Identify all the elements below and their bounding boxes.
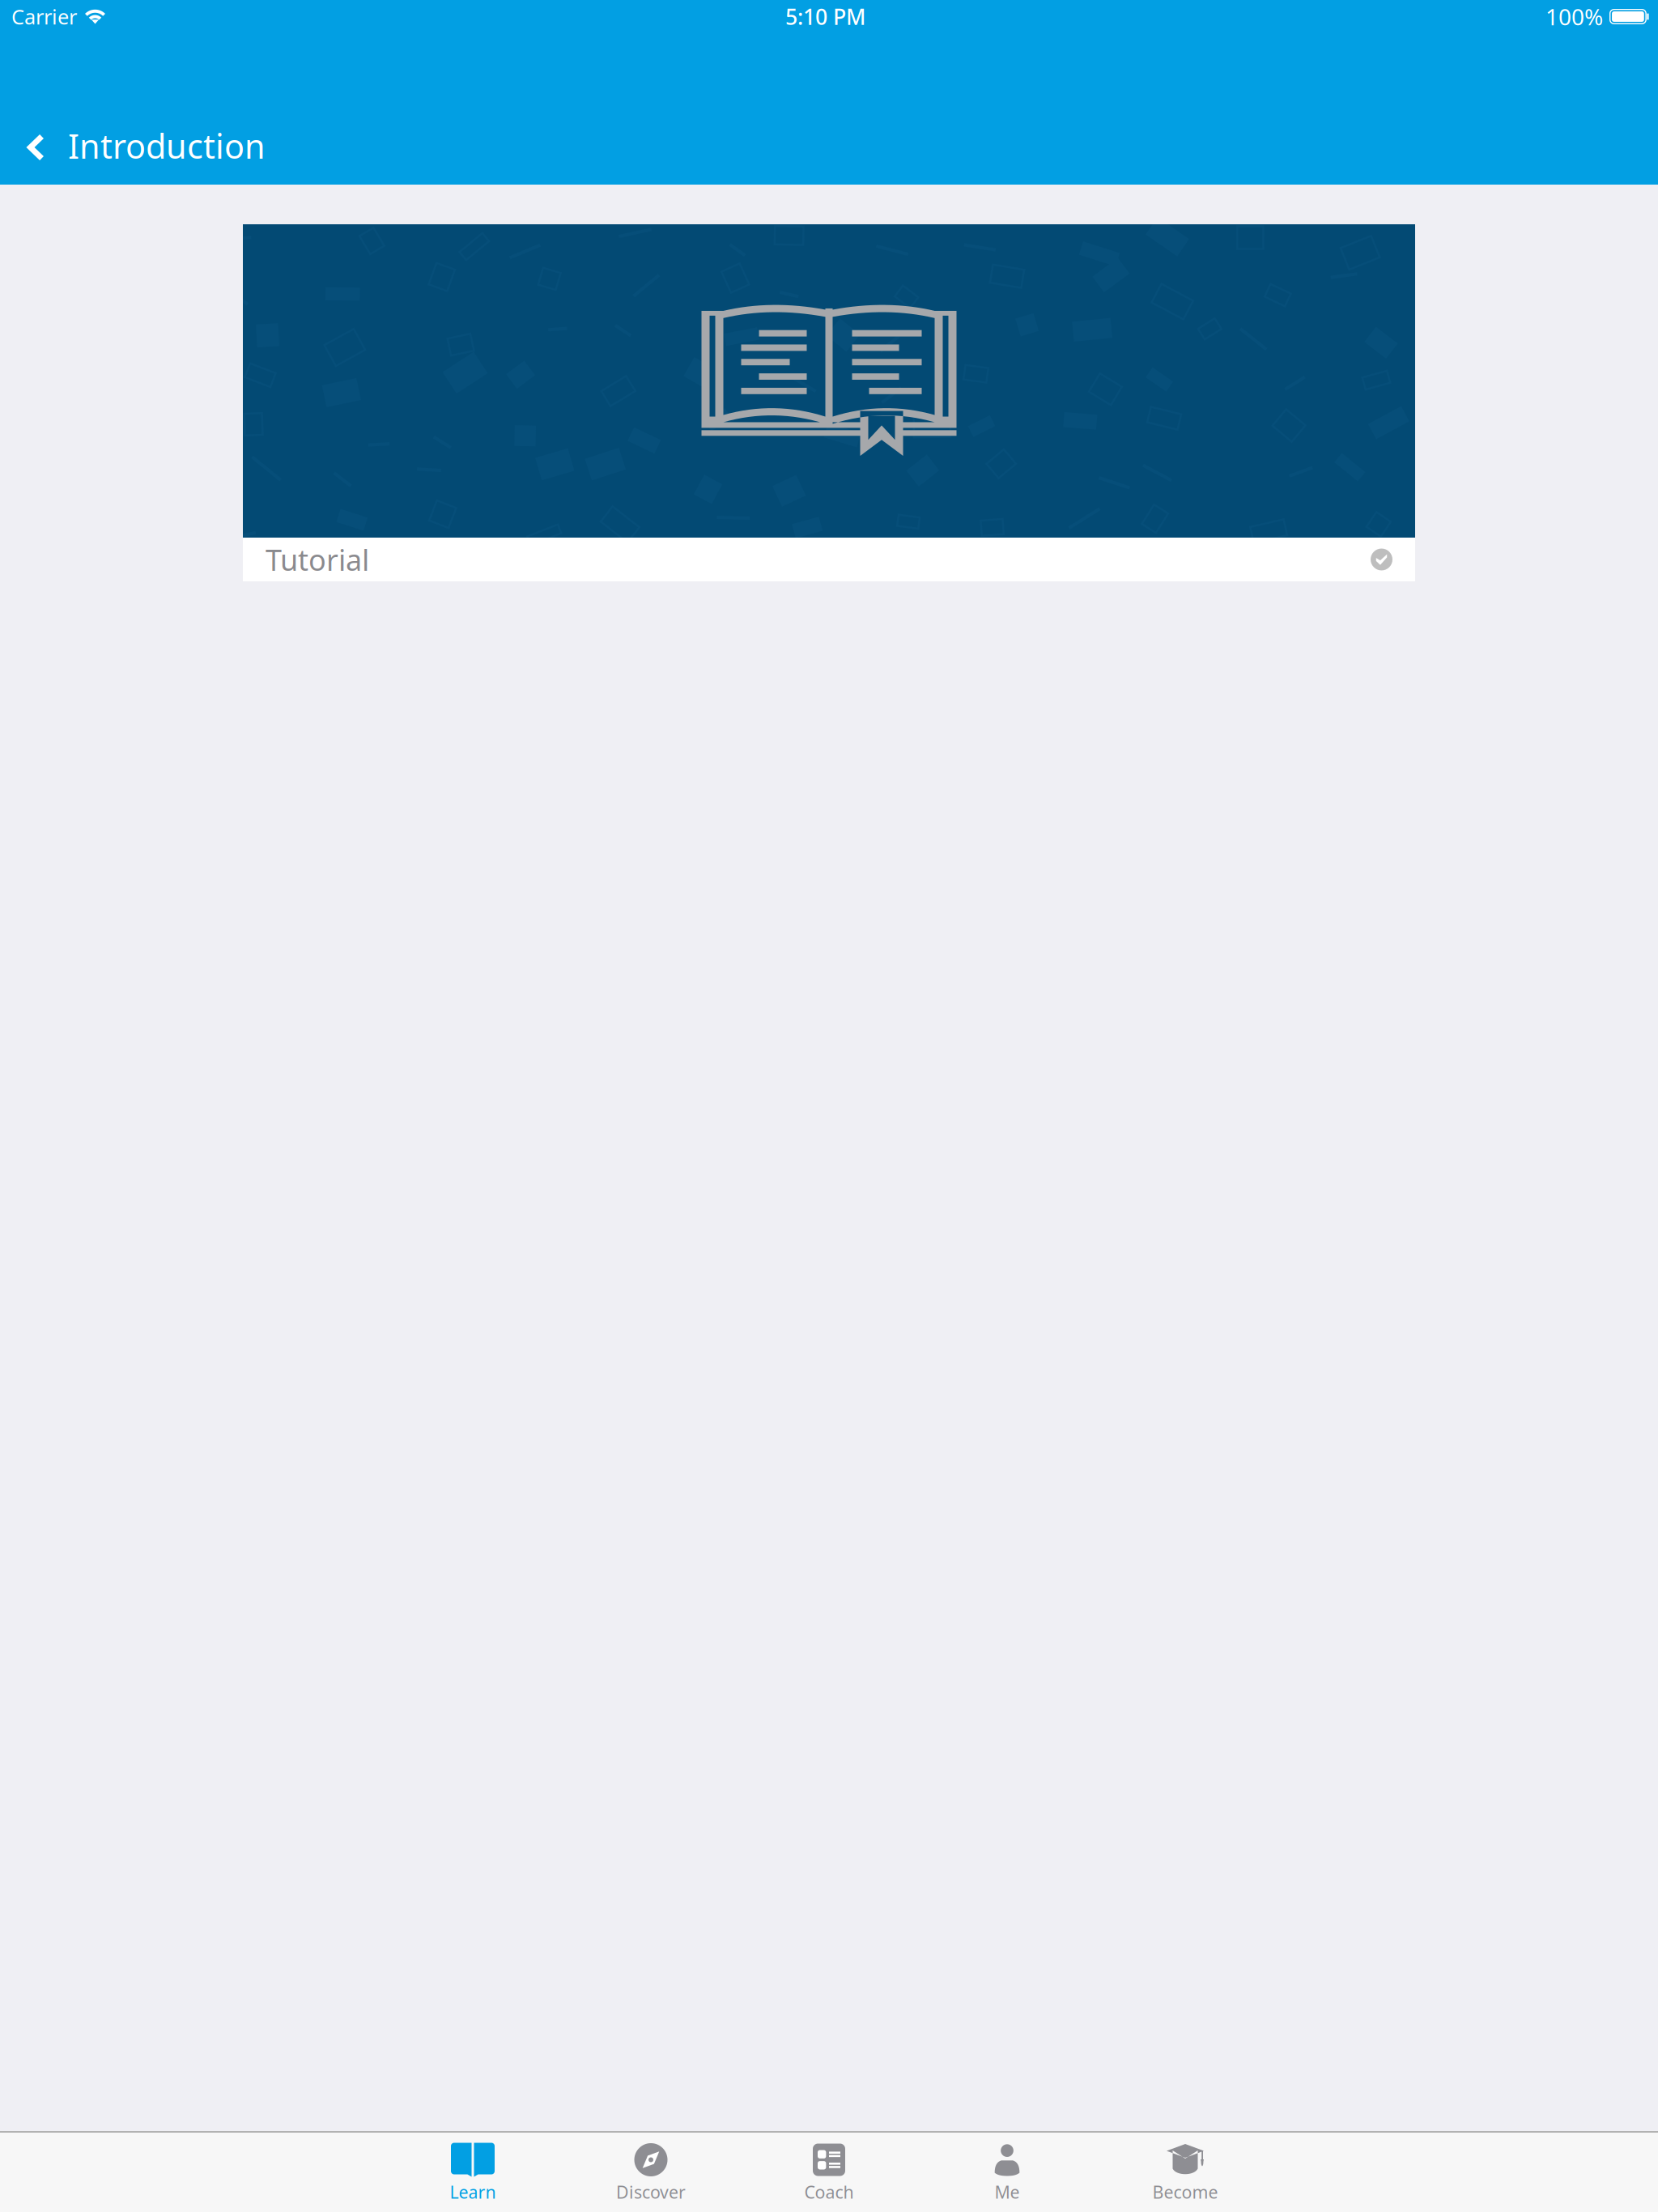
staticText: Tutorial: [266, 540, 369, 579]
button[interactable]: Introduction: [0, 107, 278, 185]
button[interactable]: Discover: [562, 2131, 740, 2212]
staticText: Learn: [450, 2180, 496, 2203]
staticText: Carrier: [11, 3, 77, 30]
staticText: Me: [995, 2180, 1020, 2203]
button[interactable]: Coach: [740, 2131, 918, 2212]
staticText: Introduction: [68, 124, 266, 168]
button[interactable]: Tutorial: [243, 224, 1415, 581]
staticText: Become: [1152, 2180, 1218, 2203]
staticText: 100%: [1545, 2, 1603, 32]
staticText: 5:10 PM: [785, 2, 865, 31]
staticText: Discover: [616, 2180, 686, 2203]
staticText: Coach: [804, 2180, 854, 2203]
button[interactable]: Me: [918, 2131, 1096, 2212]
button[interactable]: Become: [1096, 2131, 1274, 2212]
button[interactable]: Learn: [384, 2131, 562, 2212]
